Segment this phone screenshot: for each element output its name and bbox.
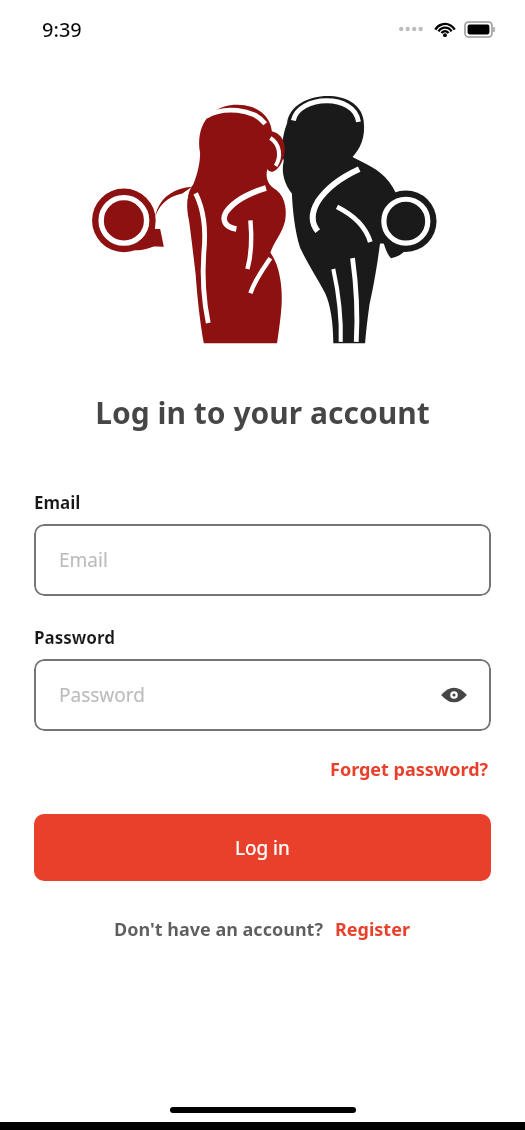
staticText: Forget password?: [330, 757, 489, 782]
staticText: Password: [59, 682, 145, 708]
button[interactable]: Show password: [437, 678, 471, 712]
button[interactable]: Password: [34, 659, 491, 731]
staticText: Email: [59, 547, 108, 573]
button[interactable]: Register: [333, 913, 412, 946]
staticText: Log in: [235, 835, 290, 861]
staticText: Register: [335, 917, 410, 942]
staticText: Email: [34, 491, 81, 514]
button[interactable]: Log in: [34, 814, 491, 881]
staticText: Don't have an account?: [114, 917, 323, 942]
button[interactable]: Forget password?: [328, 753, 491, 786]
staticText: 9:39: [42, 16, 82, 43]
staticText: Log in to your account: [0, 392, 525, 433]
button[interactable]: Email: [34, 524, 491, 596]
staticText: Password: [34, 626, 115, 649]
